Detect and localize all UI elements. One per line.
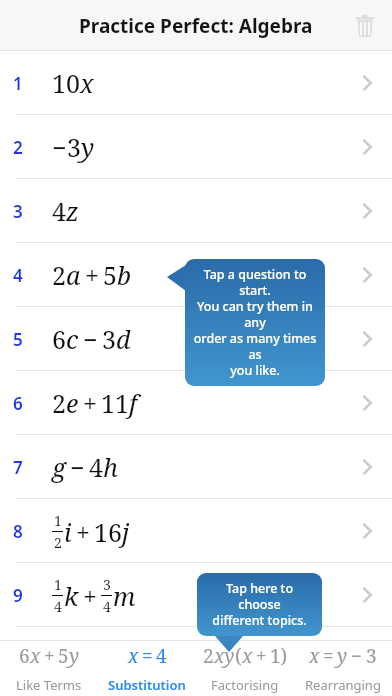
button[interactable]: 6: [0, 640, 98, 696]
button[interactable]: 1: [0, 51, 392, 115]
staticText: y: [337, 643, 348, 669]
staticText: 3: [366, 643, 377, 669]
button[interactable]: 6: [0, 371, 392, 435]
staticText: different topics.: [212, 612, 307, 629]
staticText: Tap here to choose: [205, 580, 314, 612]
staticText: x: [309, 643, 320, 669]
staticText: 6: [52, 322, 66, 356]
staticText: g: [52, 450, 66, 484]
staticText: −: [52, 130, 67, 164]
staticText: 2: [52, 258, 66, 292]
staticText: order as many times as: [193, 330, 317, 362]
staticText: =: [323, 643, 334, 669]
staticText: 3: [103, 575, 111, 594]
staticText: 3: [13, 200, 23, 223]
staticText: Substitution: [108, 676, 186, 694]
staticText: +: [44, 643, 55, 669]
staticText: m: [113, 579, 136, 613]
staticText: Practice Perfect: Algebra: [79, 13, 313, 39]
staticText: e: [66, 386, 79, 420]
staticText: 5: [103, 258, 117, 292]
staticText: 8: [13, 520, 23, 543]
staticText: 2: [13, 136, 23, 159]
staticText: Like Terms: [16, 676, 82, 694]
staticText: 1: [54, 511, 62, 530]
staticText: 9: [13, 584, 23, 607]
staticText: 7: [13, 456, 23, 479]
staticText: 1: [54, 575, 62, 594]
staticText: −: [83, 322, 98, 356]
button[interactable]: 7: [0, 435, 392, 499]
staticText: z: [66, 194, 79, 228]
staticText: (: [235, 643, 242, 669]
staticText: f: [129, 386, 137, 420]
staticText: you like.: [230, 362, 280, 379]
staticText: b: [117, 258, 132, 292]
button[interactable]: 5: [0, 307, 392, 371]
staticText: c: [66, 322, 79, 356]
staticText: Rearranging: [305, 676, 381, 694]
staticText: 4: [13, 264, 23, 287]
staticText: 3: [102, 322, 116, 356]
staticText: h: [103, 450, 118, 484]
button[interactable]: 2: [196, 640, 294, 696]
staticText: −: [351, 643, 363, 669]
staticText: +: [83, 579, 97, 613]
staticText: a: [66, 258, 81, 292]
staticText: x: [30, 643, 41, 669]
staticText: 4: [156, 643, 167, 669]
staticText: k: [64, 579, 79, 613]
button[interactable]: 4: [0, 243, 392, 307]
staticText: You can try them in any: [193, 298, 317, 330]
staticText: 1: [13, 72, 23, 95]
staticText: x: [242, 643, 253, 669]
staticText: x: [80, 66, 94, 100]
staticText: x: [128, 643, 139, 669]
staticText: 2: [52, 386, 66, 420]
button[interactable]: 9: [0, 563, 392, 627]
staticText: 10: [52, 66, 80, 100]
staticText: xy: [214, 643, 235, 669]
button[interactable]: 3: [0, 179, 392, 243]
staticText: 2: [54, 533, 62, 552]
staticText: i: [64, 515, 72, 549]
staticText: 11: [101, 386, 129, 420]
staticText: Factorising: [211, 676, 279, 694]
staticText: 4: [103, 597, 111, 616]
button[interactable]: x: [294, 640, 392, 696]
staticText: Tap a question to start.: [193, 266, 317, 298]
staticText: 6: [13, 392, 23, 415]
staticText: 5: [13, 328, 23, 351]
staticText: +: [85, 258, 99, 292]
staticText: 4: [54, 597, 62, 616]
staticText: +: [83, 386, 97, 420]
staticText: 3: [67, 130, 81, 164]
staticText: 16: [94, 515, 122, 549]
button[interactable]: 2: [0, 115, 392, 179]
staticText: 4: [52, 194, 66, 228]
staticText: −: [70, 450, 85, 484]
staticText: y: [69, 643, 80, 669]
staticText: +: [76, 515, 90, 549]
button[interactable]: x: [98, 640, 196, 696]
staticText: +: [256, 643, 267, 669]
button[interactable]: Delete: [352, 13, 378, 39]
staticText: y: [81, 130, 95, 164]
staticText: 4: [89, 450, 103, 484]
staticText: 5: [58, 643, 69, 669]
staticText: d: [116, 322, 131, 356]
staticText: 6: [19, 643, 30, 669]
staticText: j: [122, 515, 130, 549]
staticText: 2: [203, 643, 214, 669]
staticText: =: [142, 643, 153, 669]
staticText: 1): [270, 643, 288, 669]
button[interactable]: 8: [0, 499, 392, 563]
